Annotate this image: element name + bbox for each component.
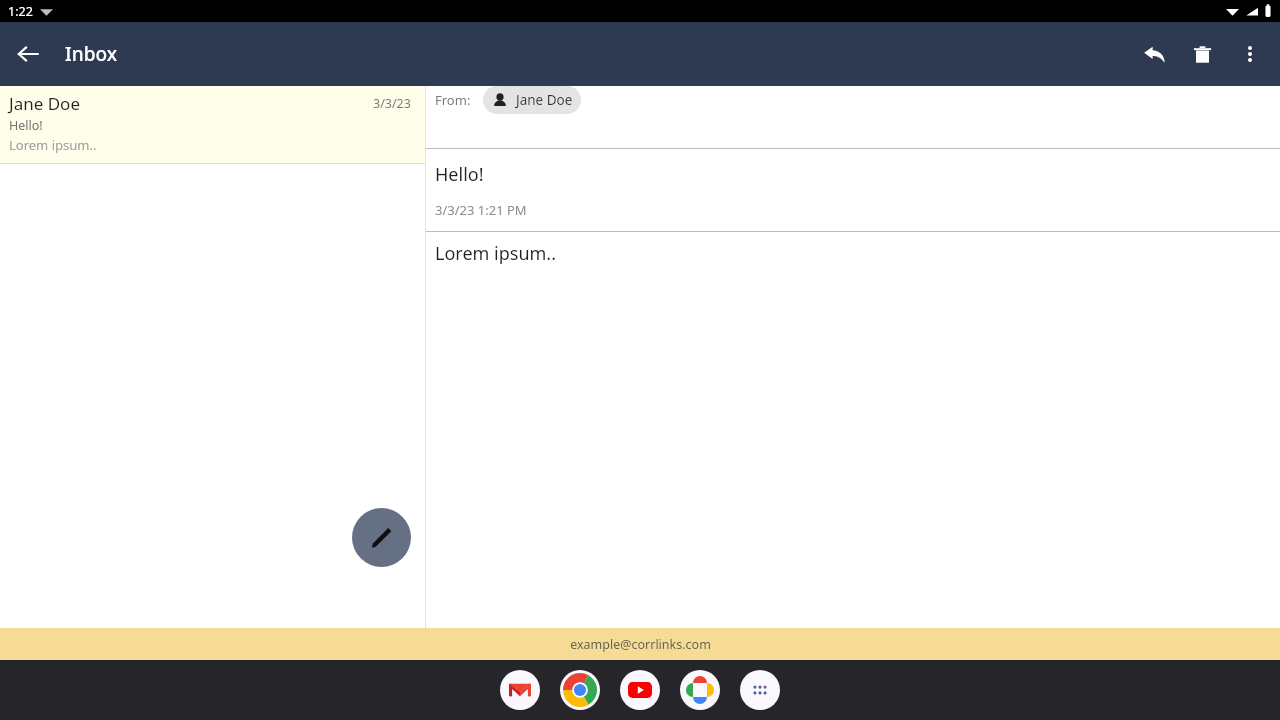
staticText: 1:22 xyxy=(8,3,33,20)
button[interactable]: Jane Doe xyxy=(0,86,425,163)
staticText: Hello! xyxy=(435,162,484,187)
button[interactable]: Chrome xyxy=(560,670,600,710)
staticText: example@corrlinks.com xyxy=(570,636,711,653)
button[interactable]: Delete xyxy=(1178,30,1226,78)
staticText: 3/3/23 xyxy=(373,95,411,112)
button[interactable]: Photos xyxy=(680,670,720,710)
button[interactable]: Back xyxy=(0,26,56,82)
staticText: 3/3/23 1:21 PM xyxy=(435,201,527,219)
staticText: Lorem ipsum.. xyxy=(435,241,556,266)
button[interactable]: Gmail xyxy=(500,670,540,710)
staticText: Hello! xyxy=(9,117,43,134)
button[interactable]: Reply xyxy=(1130,30,1178,78)
button[interactable]: example@corrlinks.com xyxy=(0,628,1280,660)
staticText: From: xyxy=(435,91,471,109)
button[interactable]: Jane Doe xyxy=(483,86,581,114)
button[interactable]: Compose xyxy=(352,508,411,567)
button[interactable]: YouTube xyxy=(620,670,660,710)
staticText: Lorem ipsum.. xyxy=(9,136,97,154)
button[interactable]: More options xyxy=(1226,30,1274,78)
staticText: Jane Doe xyxy=(9,92,80,115)
staticText: Jane Doe xyxy=(516,91,573,109)
button[interactable]: All apps xyxy=(740,670,780,710)
staticText: Inbox xyxy=(65,41,117,67)
